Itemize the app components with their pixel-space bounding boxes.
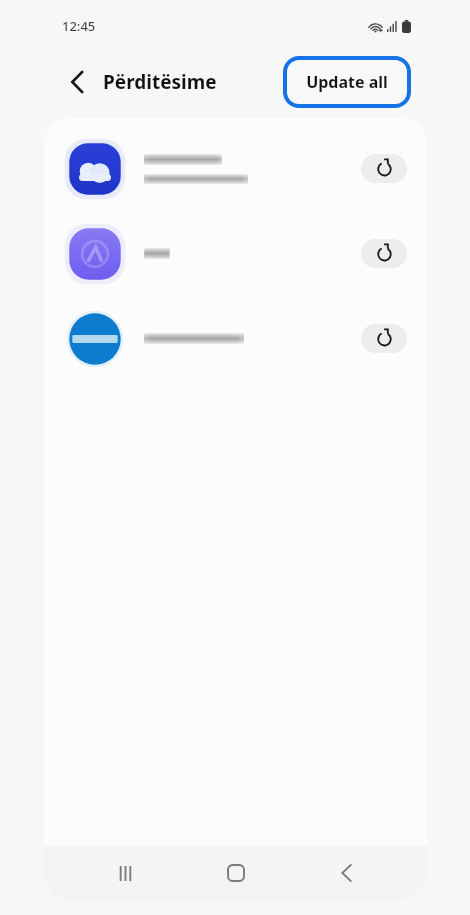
other: Back [64,69,90,95]
button[interactable]: Recents [96,846,154,900]
button[interactable]: Update all [287,60,407,104]
button[interactable]: Update [44,211,427,296]
staticText: Update all [306,71,388,93]
button[interactable]: Update [361,154,407,183]
staticText: 12:45 [62,17,96,35]
button[interactable]: Update [361,324,407,353]
staticText: Përditësime [103,69,217,95]
button[interactable]: Back [64,69,217,95]
button[interactable]: Update [44,296,427,381]
button[interactable]: Update [44,126,427,211]
button[interactable]: Update [361,239,407,268]
button[interactable]: Back [317,846,375,900]
button[interactable]: Home [207,846,265,900]
